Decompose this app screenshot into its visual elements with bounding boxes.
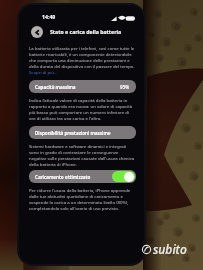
staticText: 14:49 [42,13,56,20]
button[interactable]: Capacità massima [29,80,136,93]
button[interactable]: Stato e carica della batteria [50,28,122,35]
staticText: Disponibilità prestazioni massime [35,130,111,136]
staticText: Per ridurre l'usura della batteria, iPho… [29,187,136,211]
button[interactable]: Caricamento ottimizzato [112,171,135,182]
button[interactable]: Caricamento ottimizzato [29,170,136,183]
staticText: 95% [120,84,130,90]
staticText: Sistemi hardware e software dinamici e i… [29,143,136,167]
staticText: subito [153,241,187,257]
staticText: Caricamento ottimizzato [35,174,91,180]
button[interactable]: Disponibilità prestazioni massime [29,126,136,139]
button[interactable]: Indietro [31,26,43,38]
staticText: Indica l'attuale valore di capacità dell… [29,97,136,121]
staticText: Capacità massima [35,84,76,90]
staticText: La batteria utilizzata per i telefoni, c… [29,45,136,75]
